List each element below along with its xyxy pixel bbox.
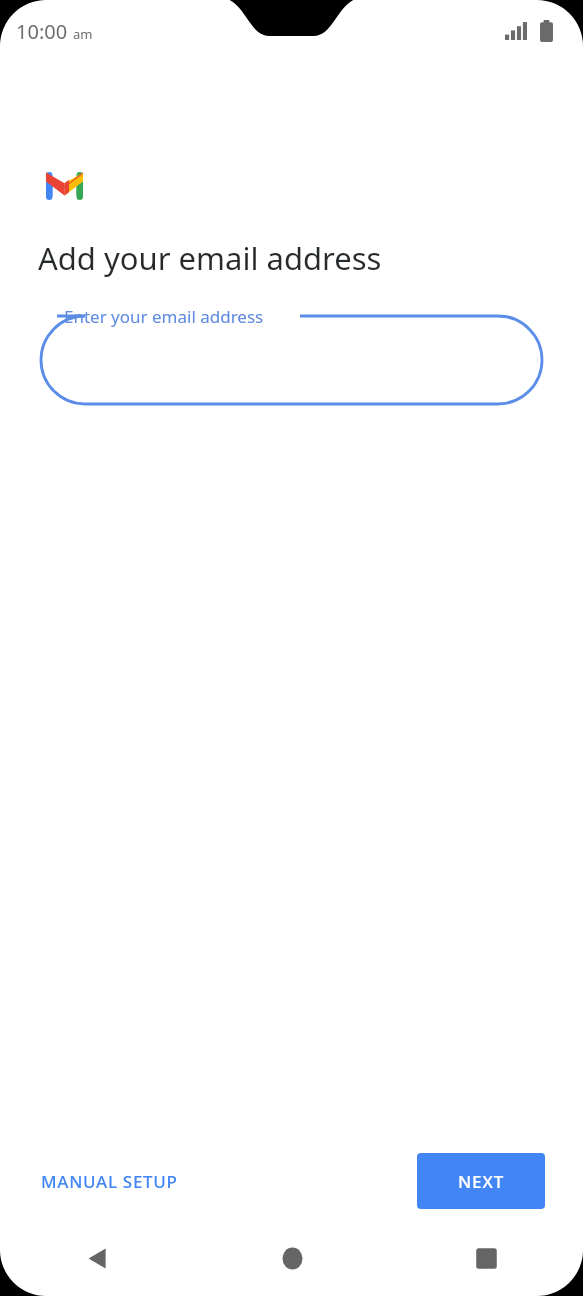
button[interactable]: MANUAL SETUP <box>38 1160 181 1203</box>
button[interactable]: NEXT <box>417 1153 545 1209</box>
button[interactable]: Recent apps <box>389 1220 583 1296</box>
staticText: am <box>73 25 93 43</box>
button[interactable]: Enter your email address <box>0 299 583 407</box>
button[interactable]: Home <box>195 1220 389 1296</box>
staticText: 10:00 <box>16 18 68 45</box>
staticText: Enter your email address <box>64 305 264 328</box>
staticText: NEXT <box>458 1170 505 1193</box>
staticText: MANUAL SETUP <box>41 1170 178 1193</box>
staticText: Add your email address <box>38 237 382 279</box>
button[interactable]: Back <box>0 1220 195 1296</box>
